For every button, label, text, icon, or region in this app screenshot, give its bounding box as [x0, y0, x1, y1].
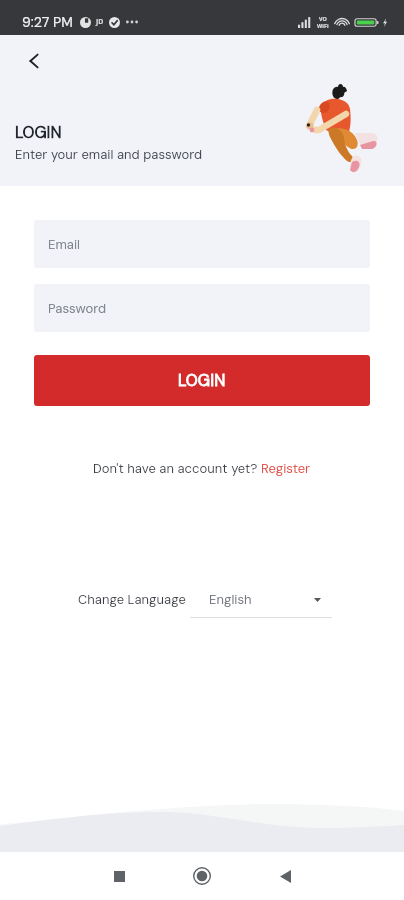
staticText: 9:27 PM — [22, 13, 73, 31]
staticText: WiFi — [317, 22, 329, 29]
staticText: JD — [96, 17, 104, 27]
button[interactable]: Back — [267, 858, 303, 894]
button[interactable]: LOGIN — [34, 355, 370, 406]
staticText: LOGIN — [15, 122, 62, 143]
button[interactable]: Email — [34, 220, 370, 268]
button[interactable]: Home — [184, 858, 220, 894]
staticText: Enter your email and password — [15, 146, 203, 163]
staticText: LOGIN — [178, 370, 226, 391]
staticText: Email — [48, 236, 81, 253]
staticText: Don't have an account yet? — [93, 460, 261, 477]
button[interactable]: Recent apps — [101, 858, 137, 894]
staticText: English — [209, 591, 252, 608]
button[interactable]: Back — [21, 48, 47, 74]
staticText: Change Language — [78, 591, 186, 608]
staticText: VO — [319, 15, 327, 22]
button[interactable]: Register — [261, 460, 311, 477]
button[interactable]: Password — [34, 284, 370, 332]
staticText: Password — [48, 300, 107, 317]
button[interactable]: English — [189, 590, 332, 618]
